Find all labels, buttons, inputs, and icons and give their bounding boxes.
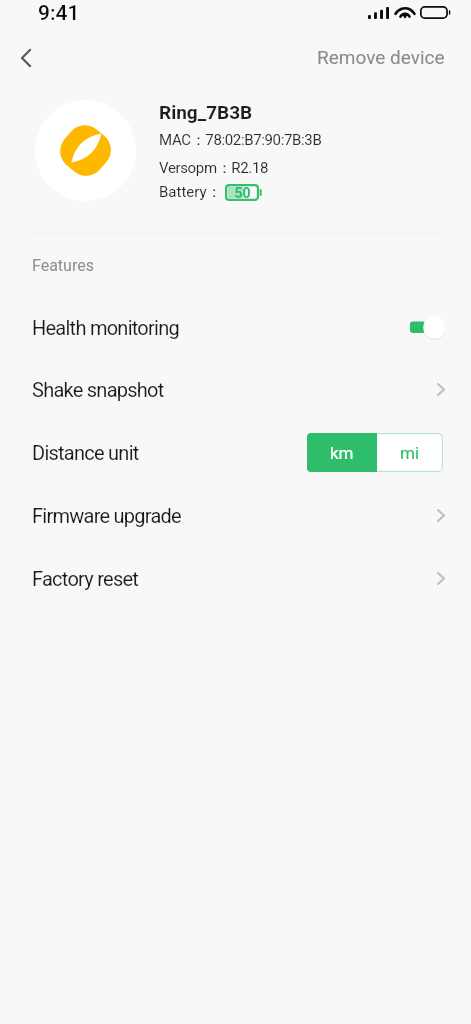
button[interactable]: Health monitoring switch, on [410, 316, 446, 339]
staticText: Firmware upgrade [32, 504, 181, 527]
staticText: Battery： [159, 183, 222, 202]
staticText: Health monitoring [32, 316, 179, 339]
staticText: 50 [224, 185, 261, 201]
button[interactable]: Firmware upgrade [0, 484, 471, 547]
button[interactable]: Shake snapshot [0, 358, 471, 421]
staticText: Shake snapshot [32, 378, 164, 401]
staticText: mi [400, 443, 420, 463]
staticText: Remove device [317, 46, 445, 68]
button[interactable]: km [307, 433, 377, 472]
button[interactable]: mi [377, 433, 443, 472]
button[interactable]: Factory reset [0, 547, 471, 610]
staticText: Distance unit [32, 441, 139, 464]
staticText: Features [32, 256, 94, 275]
staticText: MAC：78:02:B7:90:7B:3B [159, 131, 322, 150]
button[interactable]: Health monitoring [0, 296, 471, 359]
button[interactable]: Ring device avatar [35, 100, 136, 201]
button[interactable]: Back [4, 36, 48, 80]
button[interactable]: Remove device [305, 39, 457, 75]
staticText: Versopm：R2.18 [159, 159, 269, 178]
staticText: km [330, 443, 354, 463]
staticText: Factory reset [32, 567, 139, 590]
staticText: Ring_7B3B [159, 101, 253, 123]
staticText: 9:41 [38, 1, 80, 26]
